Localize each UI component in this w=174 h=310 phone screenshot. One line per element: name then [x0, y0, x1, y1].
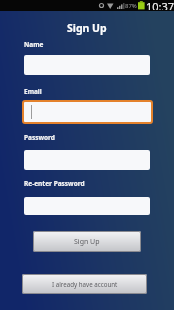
staticText: 87% [125, 2, 137, 10]
staticText: Sign Up [67, 21, 107, 35]
staticText: Sign Up [74, 237, 100, 247]
staticText: Re-enter Password [24, 179, 85, 188]
button[interactable] [24, 150, 150, 170]
button[interactable] [24, 197, 150, 215]
button[interactable] [22, 100, 153, 124]
staticText: Name [24, 40, 44, 49]
staticText: Password [24, 133, 55, 142]
staticText: 10:37 [146, 0, 174, 10]
staticText: Email [24, 87, 42, 96]
button[interactable]: Sign Up [33, 231, 141, 252]
button[interactable]: I already have account [22, 274, 147, 294]
button[interactable] [24, 55, 150, 75]
staticText: I already have account [52, 280, 118, 288]
